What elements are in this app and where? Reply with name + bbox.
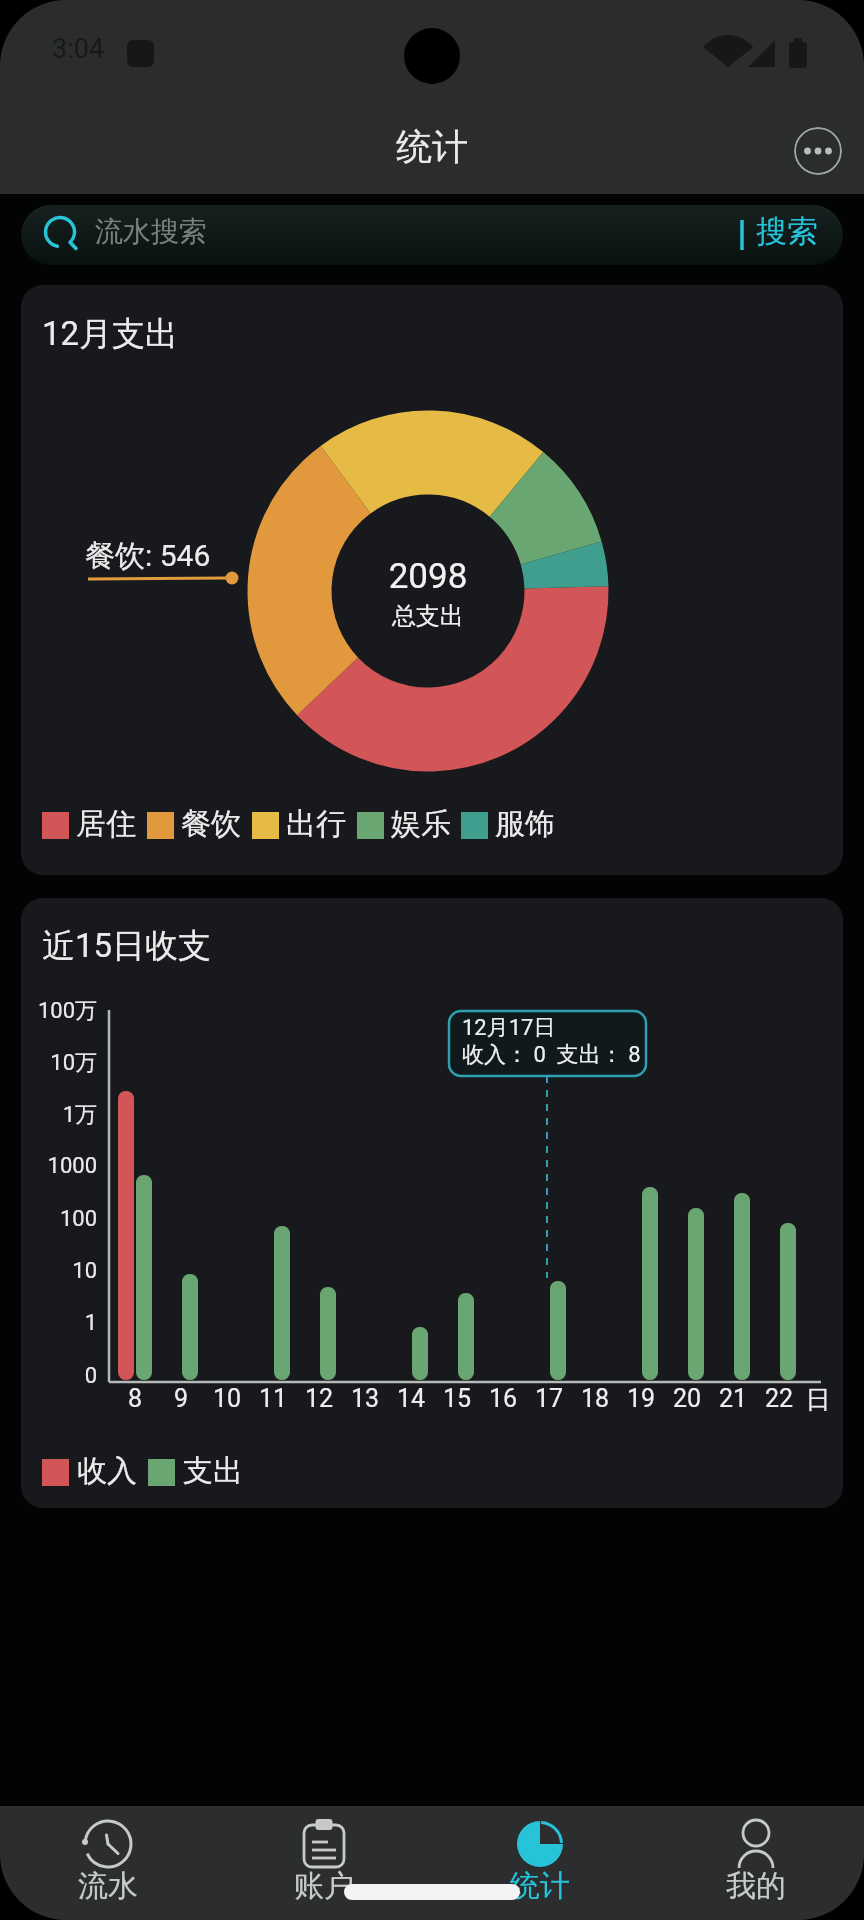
- staticText: 20: [664, 1384, 710, 1413]
- staticText: 100万: [21, 997, 97, 1025]
- staticText: 19: [618, 1384, 664, 1413]
- staticText: 0: [21, 1363, 97, 1389]
- staticText: 2098: [21, 556, 835, 597]
- staticText: 9: [158, 1384, 204, 1413]
- staticText: 22: [756, 1384, 802, 1413]
- staticText: 流水搜索: [95, 214, 207, 249]
- staticText: 居住: [76, 805, 136, 843]
- staticText: 流水: [0, 1867, 216, 1905]
- staticText: 餐饮: 546: [85, 537, 211, 575]
- staticText: 搜索: [756, 212, 818, 251]
- staticText: 账户: [216, 1867, 432, 1905]
- staticText: 10: [21, 1258, 97, 1284]
- staticText: 12月17日: [462, 1014, 556, 1042]
- staticText: 统计: [432, 1867, 648, 1905]
- staticText: 12月支出: [42, 313, 179, 355]
- staticText: 10: [204, 1384, 250, 1413]
- staticText: 16: [480, 1384, 526, 1413]
- button[interactable]: 统计: [432, 1806, 648, 1920]
- staticText: 收入： 0 支出： 8: [462, 1041, 641, 1069]
- staticText: 支出: [183, 1452, 243, 1490]
- staticText: 出行: [286, 805, 346, 843]
- staticText: 1万: [21, 1101, 97, 1129]
- staticText: 10万: [21, 1049, 97, 1077]
- button[interactable]: 我的: [648, 1806, 864, 1920]
- staticText: 1000: [21, 1153, 97, 1179]
- staticText: 收入: [77, 1452, 137, 1490]
- staticText: 近15日收支: [42, 925, 212, 967]
- staticText: 15: [434, 1384, 480, 1413]
- button[interactable]: [794, 127, 842, 175]
- button[interactable]: 流水搜索: [21, 205, 843, 265]
- staticText: 1: [21, 1310, 97, 1336]
- staticText: 统计: [0, 124, 864, 169]
- staticText: 餐饮: [181, 805, 241, 843]
- staticText: 8: [112, 1384, 158, 1413]
- staticText: 18: [572, 1384, 618, 1413]
- staticText: 总支出: [21, 601, 835, 631]
- staticText: 11: [250, 1384, 296, 1413]
- staticText: 服饰: [495, 805, 555, 843]
- staticText: 我的: [648, 1867, 864, 1905]
- staticText: 14: [388, 1384, 434, 1413]
- button[interactable]: 账户: [216, 1806, 432, 1920]
- staticText: 100: [21, 1206, 97, 1232]
- staticText: 日: [795, 1384, 841, 1415]
- button[interactable]: 流水: [0, 1806, 216, 1920]
- staticText: 3:04: [52, 33, 105, 65]
- staticText: 21: [710, 1384, 756, 1413]
- staticText: 娱乐: [391, 805, 451, 843]
- staticText: 13: [342, 1384, 388, 1413]
- staticText: 12: [296, 1384, 342, 1413]
- staticText: 17: [526, 1384, 572, 1413]
